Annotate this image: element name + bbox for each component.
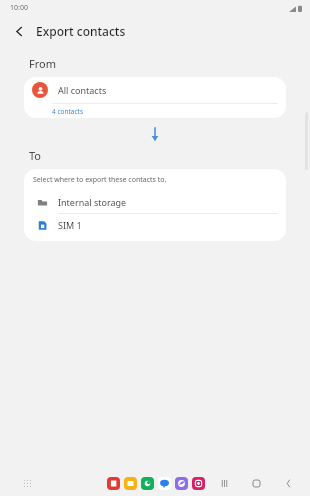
button[interactable]: All contacts [24,77,286,118]
staticText: 10:00 [10,3,28,13]
staticText: SIM 1 [58,219,82,231]
button[interactable]: Recents [216,475,232,491]
button[interactable]: Messages [158,477,171,490]
staticText: Internal storage [58,196,127,208]
button[interactable]: Internet [175,477,188,490]
button[interactable]: Files [107,477,120,490]
button[interactable]: Gallery [124,477,137,490]
staticText: From [29,56,56,71]
button[interactable]: Home [248,475,264,491]
button[interactable]: Internal storage [24,191,286,214]
button[interactable]: Back [6,18,32,44]
button[interactable]: Phone [141,477,154,490]
staticText: All contacts [58,84,107,96]
staticText: Export contacts [36,23,126,39]
staticText: Select where to export these contacts to… [33,175,167,185]
button[interactable]: SIM 1 [24,214,286,241]
button[interactable]: Instagram [192,477,205,490]
button[interactable]: Apps [18,474,36,492]
staticText: To [29,148,42,163]
staticText: 4 contacts [52,107,84,116]
button[interactable]: Back [280,475,296,491]
